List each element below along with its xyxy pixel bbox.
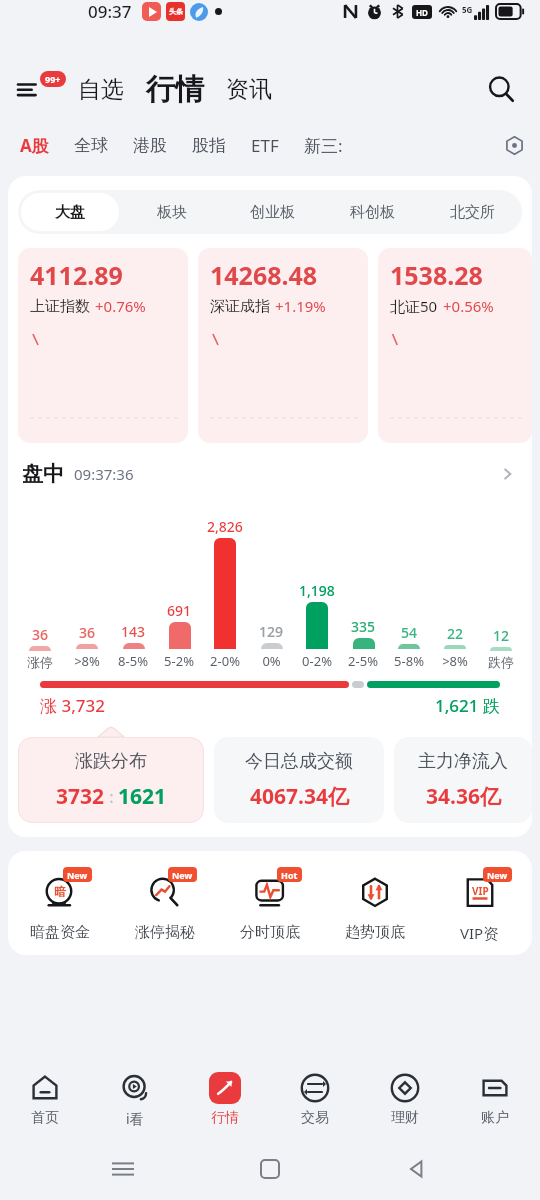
staticText: VIP (472, 884, 489, 898)
button[interactable]: 行情 (144, 69, 206, 110)
button[interactable]: 板块 (125, 193, 219, 231)
button[interactable]: 自选 (74, 69, 128, 110)
staticText: New (67, 869, 88, 881)
staticText: 理财 (391, 1109, 419, 1127)
staticText: >8% (442, 652, 468, 670)
button[interactable]: A股 (18, 128, 51, 163)
staticText: 4067.34亿 (250, 782, 349, 811)
button[interactable]: 大盘 (21, 193, 119, 231)
staticText: 北证50 (390, 296, 438, 316)
staticText: 暗盘资金 (30, 923, 90, 942)
staticText: 8-5% (118, 652, 148, 670)
button[interactable]: 暗 (8, 867, 112, 942)
button[interactable]: Recents (99, 1145, 147, 1193)
staticText: 36 (32, 625, 49, 644)
staticText: 0% (262, 652, 281, 670)
staticText: 深证成指 (210, 297, 270, 316)
staticText: 22 (447, 624, 464, 643)
button[interactable]: 北交所 (425, 193, 519, 231)
button[interactable]: New (112, 867, 217, 942)
button[interactable]: Search (480, 68, 522, 110)
staticText: 涨停 (27, 654, 53, 670)
staticText: 0-2% (302, 652, 332, 670)
button[interactable]: 趋势顶底 (322, 867, 427, 942)
staticText: 36 (79, 623, 96, 642)
staticText: 09:37 (88, 0, 132, 23)
button[interactable]: 创业板 (225, 193, 319, 231)
staticText: 2,826 (207, 517, 243, 536)
staticText: 4112.89 (30, 258, 123, 292)
staticText: 北交所 (450, 203, 495, 222)
button[interactable]: 14268.48 (198, 248, 368, 443)
staticText: 1538.28 (390, 258, 483, 292)
staticText: 股指 (192, 135, 226, 156)
button[interactable]: 股指 (190, 129, 228, 162)
staticText: 5G (462, 4, 473, 15)
staticText: Hot (281, 869, 298, 881)
button[interactable]: 行情 (180, 1060, 270, 1138)
button[interactable]: Menu (18, 69, 64, 109)
staticText: 1,198 (299, 581, 335, 600)
button[interactable]: 账户 (450, 1060, 540, 1138)
staticText: A股 (20, 134, 49, 157)
staticText: 新三: (304, 134, 343, 157)
staticText: 交易 (301, 1109, 329, 1127)
button[interactable]: 盘中 (22, 461, 518, 487)
staticText: 创业板 (250, 203, 295, 222)
staticText: 涨 3,732 (40, 694, 105, 717)
staticText: +0.56% (443, 296, 494, 316)
button[interactable]: 交易 (270, 1060, 360, 1138)
staticText: 691 (167, 601, 192, 620)
button[interactable]: 理财 (360, 1060, 450, 1138)
button[interactable]: Home (246, 1145, 294, 1193)
button[interactable]: 涨跌分布 (18, 737, 204, 823)
button[interactable]: i看 (90, 1060, 180, 1138)
staticText: 5-8% (394, 652, 424, 670)
button[interactable]: Hot (217, 867, 322, 942)
staticText: 涨跌分布 (75, 750, 147, 773)
button[interactable]: VIP (427, 867, 532, 943)
staticText: 今日总成交额 (245, 750, 353, 773)
staticText: New (172, 869, 193, 881)
staticText: 暗 (54, 884, 66, 899)
staticText: 129 (259, 622, 284, 641)
staticText: 143 (121, 622, 146, 641)
button[interactable]: 新三: (302, 128, 345, 163)
staticText: 账户 (481, 1109, 509, 1127)
staticText: : (105, 786, 118, 808)
staticText: 行情 (211, 1109, 239, 1127)
button[interactable]: 4112.89 (18, 248, 188, 443)
staticText: 首页 (31, 1109, 59, 1127)
staticText: 1,621 跌 (435, 694, 500, 717)
staticText: 盘中 (22, 461, 64, 487)
button[interactable]: 首页 (0, 1060, 90, 1138)
staticText: 99+ (45, 73, 61, 85)
staticText: 335 (351, 617, 376, 636)
staticText: HD (416, 7, 428, 18)
button[interactable]: More markets (498, 129, 530, 161)
staticText: 34.36亿 (426, 782, 501, 811)
button[interactable]: 科创板 (325, 193, 419, 231)
button[interactable]: 今日总成交额 (214, 737, 384, 823)
button[interactable]: 1538.28 (378, 248, 532, 443)
button[interactable]: 资讯 (222, 69, 276, 110)
staticText: VIP资 (460, 923, 499, 943)
staticText: 12 (493, 626, 510, 645)
button[interactable]: 全球 (72, 129, 110, 162)
button[interactable]: ETF (249, 128, 281, 163)
staticText: 趋势顶底 (345, 923, 405, 942)
staticText: 2-0% (210, 652, 240, 670)
staticText: 3732 (56, 782, 105, 811)
staticText: 板块 (157, 203, 187, 222)
staticText: 行情 (146, 71, 204, 108)
staticText: 14268.48 (210, 258, 318, 292)
button[interactable]: 主力净流入 (394, 737, 532, 823)
staticText: 头条 (169, 7, 183, 16)
staticText: >8% (74, 652, 100, 670)
button[interactable]: Back (393, 1145, 441, 1193)
staticText: 上证指数 (30, 297, 90, 316)
staticText: 分时顶底 (240, 923, 300, 942)
staticText: 大盘 (55, 203, 85, 222)
staticText: +1.19% (275, 296, 326, 316)
button[interactable]: 港股 (131, 129, 169, 162)
